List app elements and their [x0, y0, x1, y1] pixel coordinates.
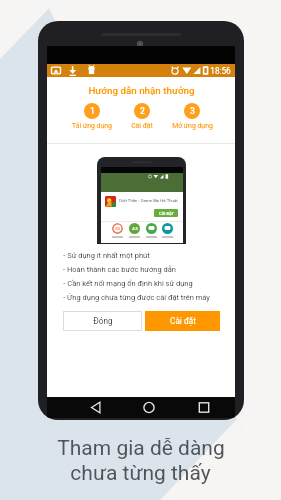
- staticText: - Ứng dụng chưa từng được cài đặt trên m…: [63, 293, 210, 302]
- staticText: Cài đặt: [170, 316, 196, 326]
- button[interactable]: 2: [117, 103, 167, 130]
- staticText: chưa từng thấy: [70, 461, 211, 486]
- staticText: Diệt Thần - Game Bài Hà Thuật: [119, 198, 178, 203]
- staticText: Tải ứng dụng: [72, 122, 112, 130]
- staticText: Cài đặt: [131, 122, 153, 130]
- staticText: Mở ứng dụng: [172, 122, 213, 130]
- button[interactable]: Đóng: [63, 311, 142, 331]
- staticText: 4.5: [132, 226, 138, 231]
- staticText: Đóng: [93, 316, 113, 326]
- staticText: Tham gia dễ dàng: [57, 436, 225, 461]
- staticText: 3: [190, 106, 195, 116]
- staticText: 18:56: [210, 66, 231, 76]
- staticText: Hướng dẫn nhận thưởng: [88, 85, 195, 96]
- button[interactable]: 3: [167, 103, 217, 130]
- staticText: 2: [140, 106, 145, 116]
- button[interactable]: Số lượng: [112, 223, 123, 238]
- button[interactable]: Liên hệ: [146, 223, 157, 238]
- staticText: 50: [115, 226, 120, 231]
- button[interactable]: CÀI ĐẶT: [154, 209, 178, 217]
- staticText: - Cần kết nối mạng ổn định khi sử dụng: [63, 279, 193, 288]
- staticText: - Sử dụng ít nhất một phút: [63, 251, 150, 260]
- button[interactable]: Đánh giá: [129, 223, 140, 238]
- button[interactable]: 1: [67, 103, 117, 130]
- other: Navigation bar: [47, 397, 235, 418]
- staticText: CÀI ĐẶT: [159, 211, 174, 216]
- button[interactable]: Tải về: [162, 223, 173, 238]
- staticText: 1: [90, 106, 95, 116]
- button[interactable]: Cài đặt: [145, 311, 220, 331]
- staticText: - Hoàn thành các bước hướng dẫn: [63, 265, 176, 274]
